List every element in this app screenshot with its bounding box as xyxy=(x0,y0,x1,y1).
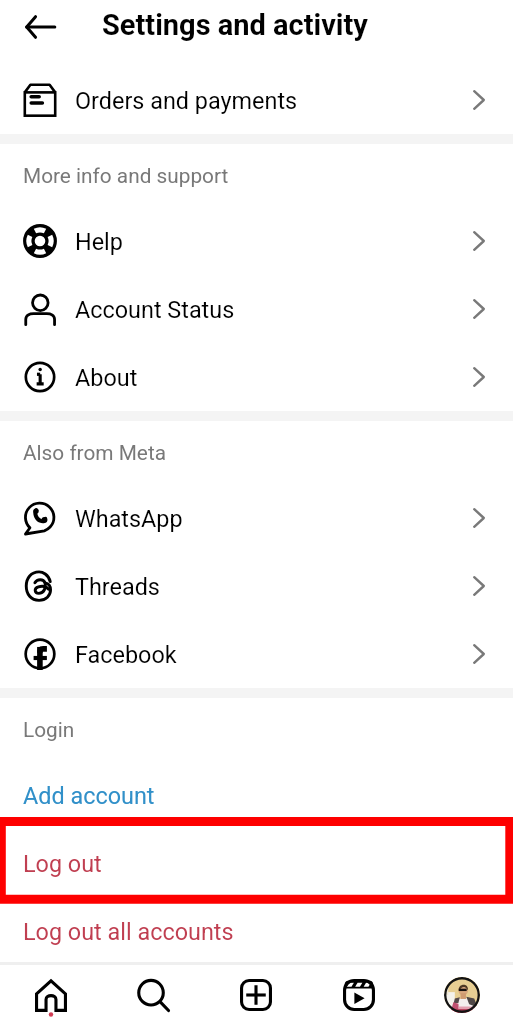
button[interactable]: Log out xyxy=(0,829,513,897)
staticText: WhatsApp xyxy=(75,505,183,532)
staticText: Facebook xyxy=(75,641,177,668)
staticText: Log out xyxy=(23,850,102,877)
button[interactable]: WhatsApp xyxy=(0,484,513,552)
staticText: Help xyxy=(75,228,123,255)
staticText: Threads xyxy=(75,573,160,600)
button[interactable]: Add account xyxy=(0,761,513,829)
staticText: Also from Meta xyxy=(23,441,167,465)
staticText: Account Status xyxy=(75,296,235,323)
staticText: Settings and activity xyxy=(102,8,368,42)
button[interactable]: Facebook xyxy=(0,620,513,688)
button[interactable]: Create xyxy=(204,965,307,1024)
button[interactable]: Profile xyxy=(410,965,513,1024)
button[interactable]: About xyxy=(0,343,513,411)
staticText: Add account xyxy=(23,782,155,809)
button[interactable]: Account Status xyxy=(0,275,513,343)
staticText: About xyxy=(75,364,138,391)
button[interactable]: Back xyxy=(8,11,72,43)
staticText: Login xyxy=(23,718,75,742)
button[interactable]: Home xyxy=(0,965,102,1024)
staticText: Orders and payments xyxy=(75,87,298,114)
staticText: Log out all accounts xyxy=(23,918,234,945)
button[interactable]: Reels xyxy=(307,965,410,1024)
button[interactable]: Orders and payments xyxy=(0,66,513,134)
button[interactable]: Search xyxy=(102,965,204,1024)
button[interactable]: Help xyxy=(0,207,513,275)
button[interactable]: Log out all accounts xyxy=(0,897,513,965)
staticText: More info and support xyxy=(23,164,229,188)
button[interactable]: Threads xyxy=(0,552,513,620)
